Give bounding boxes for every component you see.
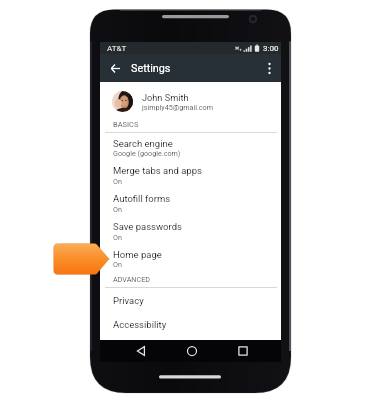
button[interactable]: Back: [132, 342, 150, 360]
staticText: John Smith: [142, 92, 189, 103]
button[interactable]: [100, 217, 281, 245]
staticText: On: [113, 260, 122, 268]
staticText: Home page: [113, 249, 162, 260]
staticText: Settings: [131, 62, 171, 75]
staticText: BASICS: [113, 120, 139, 129]
staticText: Google (google.com): [113, 149, 181, 157]
button[interactable]: [100, 286, 281, 308]
staticText: ADVANCED: [113, 275, 150, 283]
staticText: Merge tabs and apps: [113, 165, 202, 176]
button[interactable]: [100, 134, 281, 162]
button[interactable]: John Smith: [100, 86, 281, 116]
staticText: Save passwords: [113, 221, 182, 232]
button[interactable]: Recent apps: [234, 342, 252, 360]
button[interactable]: [100, 189, 281, 217]
staticText: jsimply45@gmail.com: [142, 103, 214, 111]
staticText: On: [113, 177, 122, 185]
button[interactable]: [100, 245, 281, 273]
staticText: 3:00: [263, 44, 279, 53]
staticText: Privacy: [113, 295, 144, 306]
button[interactable]: Home: [183, 342, 201, 360]
button[interactable]: [100, 310, 281, 332]
button[interactable]: [100, 161, 281, 189]
staticText: On: [113, 233, 122, 241]
staticText: On: [113, 205, 122, 213]
staticText: Accessibility: [113, 319, 167, 330]
button[interactable]: More options: [258, 57, 280, 79]
button[interactable]: Back: [103, 56, 127, 80]
staticText: AT&T: [107, 44, 127, 53]
staticText: Search engine: [113, 138, 173, 149]
staticText: Autofill forms: [113, 193, 171, 204]
